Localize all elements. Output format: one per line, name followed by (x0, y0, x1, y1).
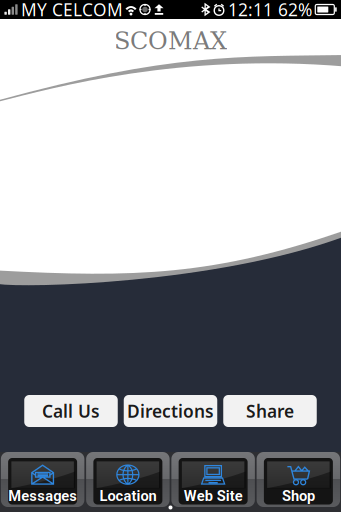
staticText: Share (246, 399, 294, 422)
button[interactable]: Shop (256, 452, 341, 512)
staticText: Shop (282, 487, 315, 505)
button[interactable]: Call Us (24, 395, 118, 427)
button[interactable]: Share (223, 395, 317, 427)
button[interactable]: Web Site (170, 452, 256, 512)
staticText: Messages (8, 487, 77, 505)
button[interactable]: Directions (124, 395, 217, 427)
button[interactable]: Location (85, 452, 170, 512)
staticText: 12:11 62% (228, 0, 312, 21)
staticText: Call Us (42, 399, 100, 422)
staticText: MY CELCOM (21, 0, 123, 21)
staticText: SCOMAX (114, 27, 227, 55)
staticText: Directions (127, 399, 214, 422)
button[interactable]: Messages (0, 452, 85, 512)
staticText: Web Site (184, 487, 243, 505)
staticText: Location (99, 487, 156, 505)
